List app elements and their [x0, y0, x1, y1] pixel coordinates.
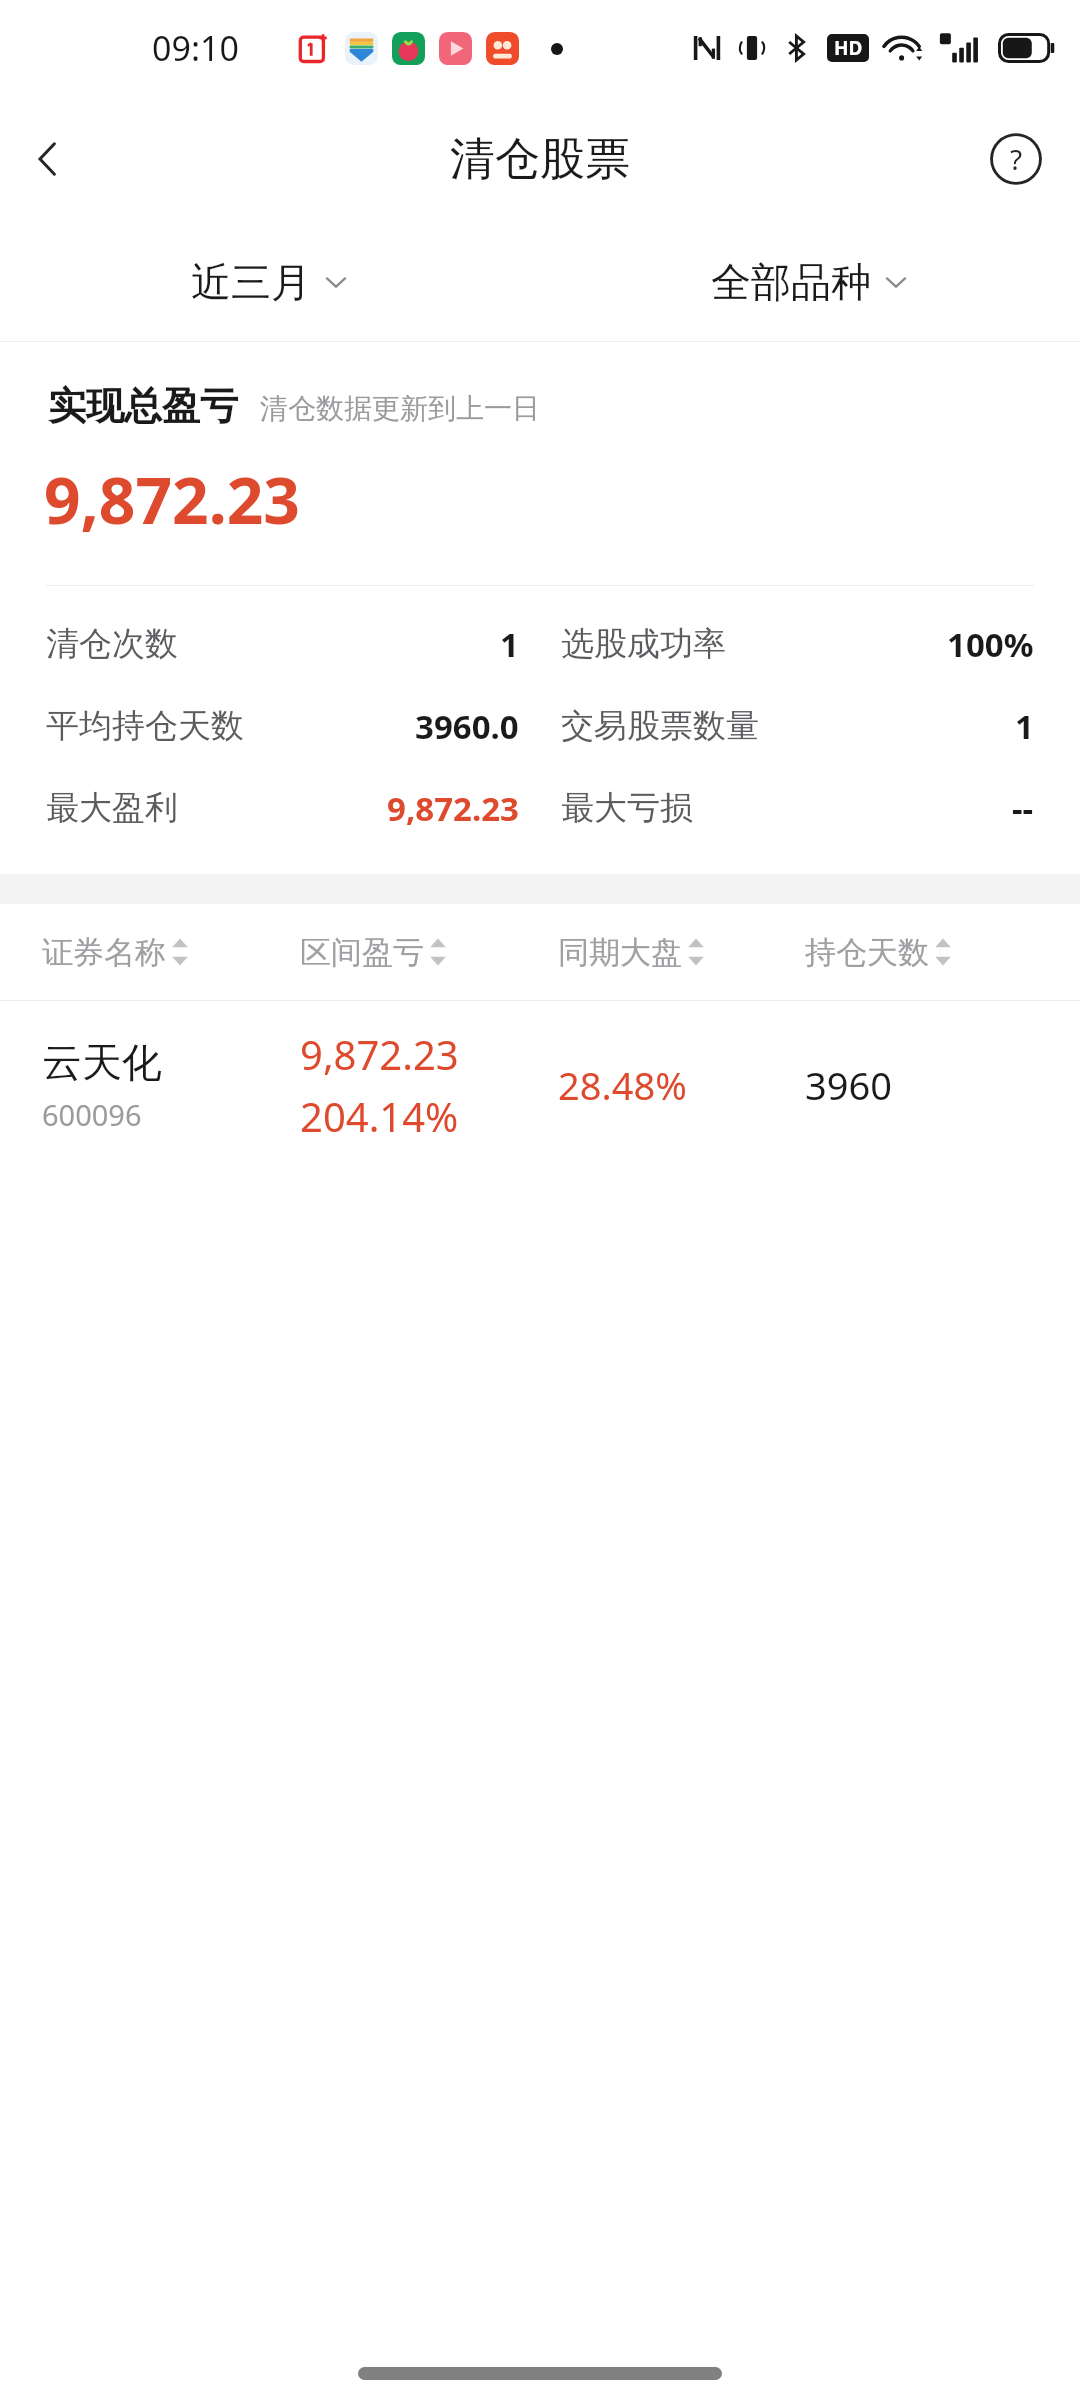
staticText: 204.14% — [300, 1089, 459, 1143]
staticText: 全部品种 — [711, 257, 871, 307]
button[interactable]: 证券名称 — [42, 904, 300, 1000]
staticText: 同期大盘 — [558, 933, 682, 972]
staticText: 最大亏损 — [561, 787, 693, 829]
staticText: 实现总盈亏 — [48, 382, 238, 430]
staticText: 云天化 — [42, 1037, 162, 1087]
staticText: 平均持仓天数 — [46, 705, 244, 747]
staticText: 证券名称 — [42, 933, 166, 972]
staticText: 区间盈亏 — [300, 933, 424, 972]
button[interactable]: 区间盈亏 — [300, 904, 558, 1000]
button[interactable]: 近三月 — [0, 222, 540, 342]
staticText: 09:10 — [152, 25, 239, 71]
staticText: 清仓股票 — [450, 131, 630, 188]
staticText: 1 — [1015, 704, 1034, 749]
staticText: 3960 — [805, 1059, 892, 1111]
staticText: ? — [1010, 140, 1023, 178]
staticText: 100% — [947, 622, 1034, 667]
staticText: 1 — [500, 622, 519, 667]
button[interactable]: 同期大盘 — [558, 904, 805, 1000]
staticText: 交易股票数量 — [561, 705, 759, 747]
button[interactable]: 全部品种 — [540, 222, 1080, 342]
button[interactable]: 云天化 — [0, 1001, 1080, 1169]
staticText: 3960.0 — [415, 704, 519, 749]
staticText: 近三月 — [191, 257, 311, 307]
staticText: -- — [1012, 786, 1034, 831]
button[interactable]: Back — [0, 111, 96, 207]
staticText: 9,872.23 — [300, 1027, 459, 1081]
staticText: 28.48% — [558, 1059, 687, 1111]
staticText: 9,872.23 — [387, 786, 519, 831]
staticText: HD — [834, 35, 863, 61]
staticText: 最大盈利 — [46, 787, 178, 829]
staticText: 持仓天数 — [805, 933, 929, 972]
staticText: 选股成功率 — [561, 623, 726, 665]
staticText: 9,872.23 — [44, 456, 300, 543]
button[interactable]: Help — [980, 123, 1052, 195]
staticText: 600096 — [42, 1095, 142, 1134]
staticText: 清仓次数 — [46, 623, 178, 665]
staticText: 清仓数据更新到上一日 — [260, 391, 540, 426]
button[interactable]: 持仓天数 — [805, 904, 1052, 1000]
